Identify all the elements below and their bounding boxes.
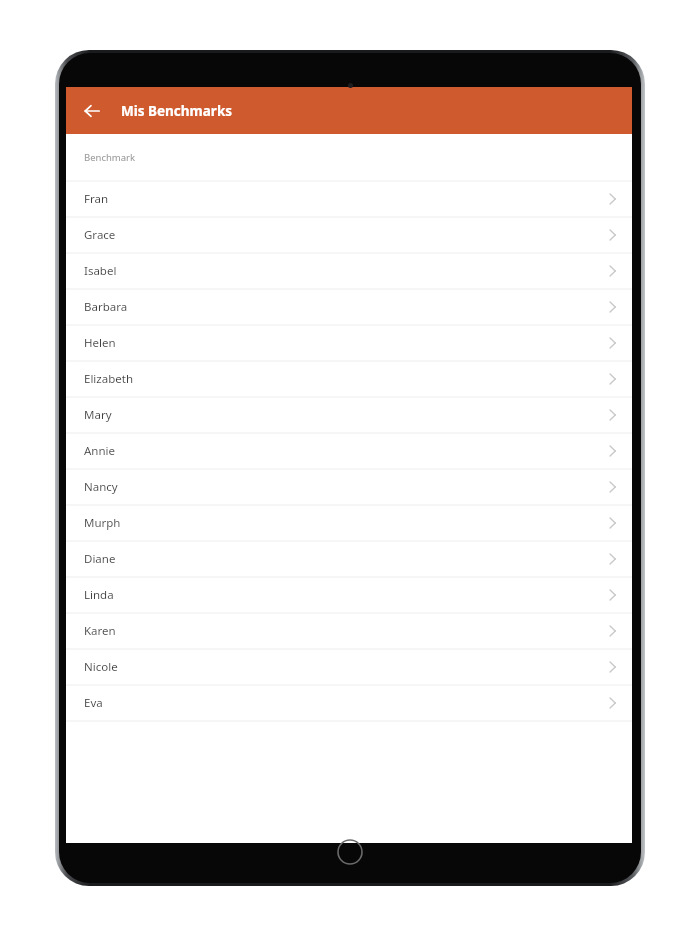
staticText: Linda — [84, 587, 114, 603]
button[interactable]: Grace — [66, 217, 632, 253]
staticText: Helen — [84, 335, 116, 351]
button[interactable]: Karen — [66, 613, 632, 649]
staticText: Mis Benchmarks — [121, 102, 233, 120]
staticText: Murph — [84, 515, 121, 531]
staticText: Isabel — [84, 263, 117, 279]
staticText: Nicole — [84, 659, 118, 675]
staticText: Elizabeth — [84, 371, 134, 387]
staticText: Annie — [84, 443, 116, 459]
button[interactable]: Barbara — [66, 289, 632, 325]
button[interactable]: Nicole — [66, 649, 632, 685]
button[interactable]: Nancy — [66, 469, 632, 505]
button[interactable]: Elizabeth — [66, 361, 632, 397]
button[interactable]: Eva — [66, 685, 632, 721]
button[interactable]: Helen — [66, 325, 632, 361]
staticText: Barbara — [84, 299, 128, 315]
staticText: Nancy — [84, 479, 118, 495]
button[interactable]: Annie — [66, 433, 632, 469]
staticText: Benchmark — [84, 151, 136, 164]
button[interactable]: Diane — [66, 541, 632, 577]
staticText: Diane — [84, 551, 116, 567]
button[interactable]: Back — [74, 93, 110, 129]
staticText: Karen — [84, 623, 116, 639]
button[interactable]: Mary — [66, 397, 632, 433]
staticText: Grace — [84, 227, 116, 243]
other: Home — [337, 839, 363, 865]
staticText: Mary — [84, 407, 112, 423]
button[interactable]: Linda — [66, 577, 632, 613]
staticText: Eva — [84, 695, 103, 711]
button[interactable]: Murph — [66, 505, 632, 541]
staticText: Fran — [84, 191, 109, 207]
button[interactable]: Isabel — [66, 253, 632, 289]
button[interactable]: Fran — [66, 181, 632, 217]
